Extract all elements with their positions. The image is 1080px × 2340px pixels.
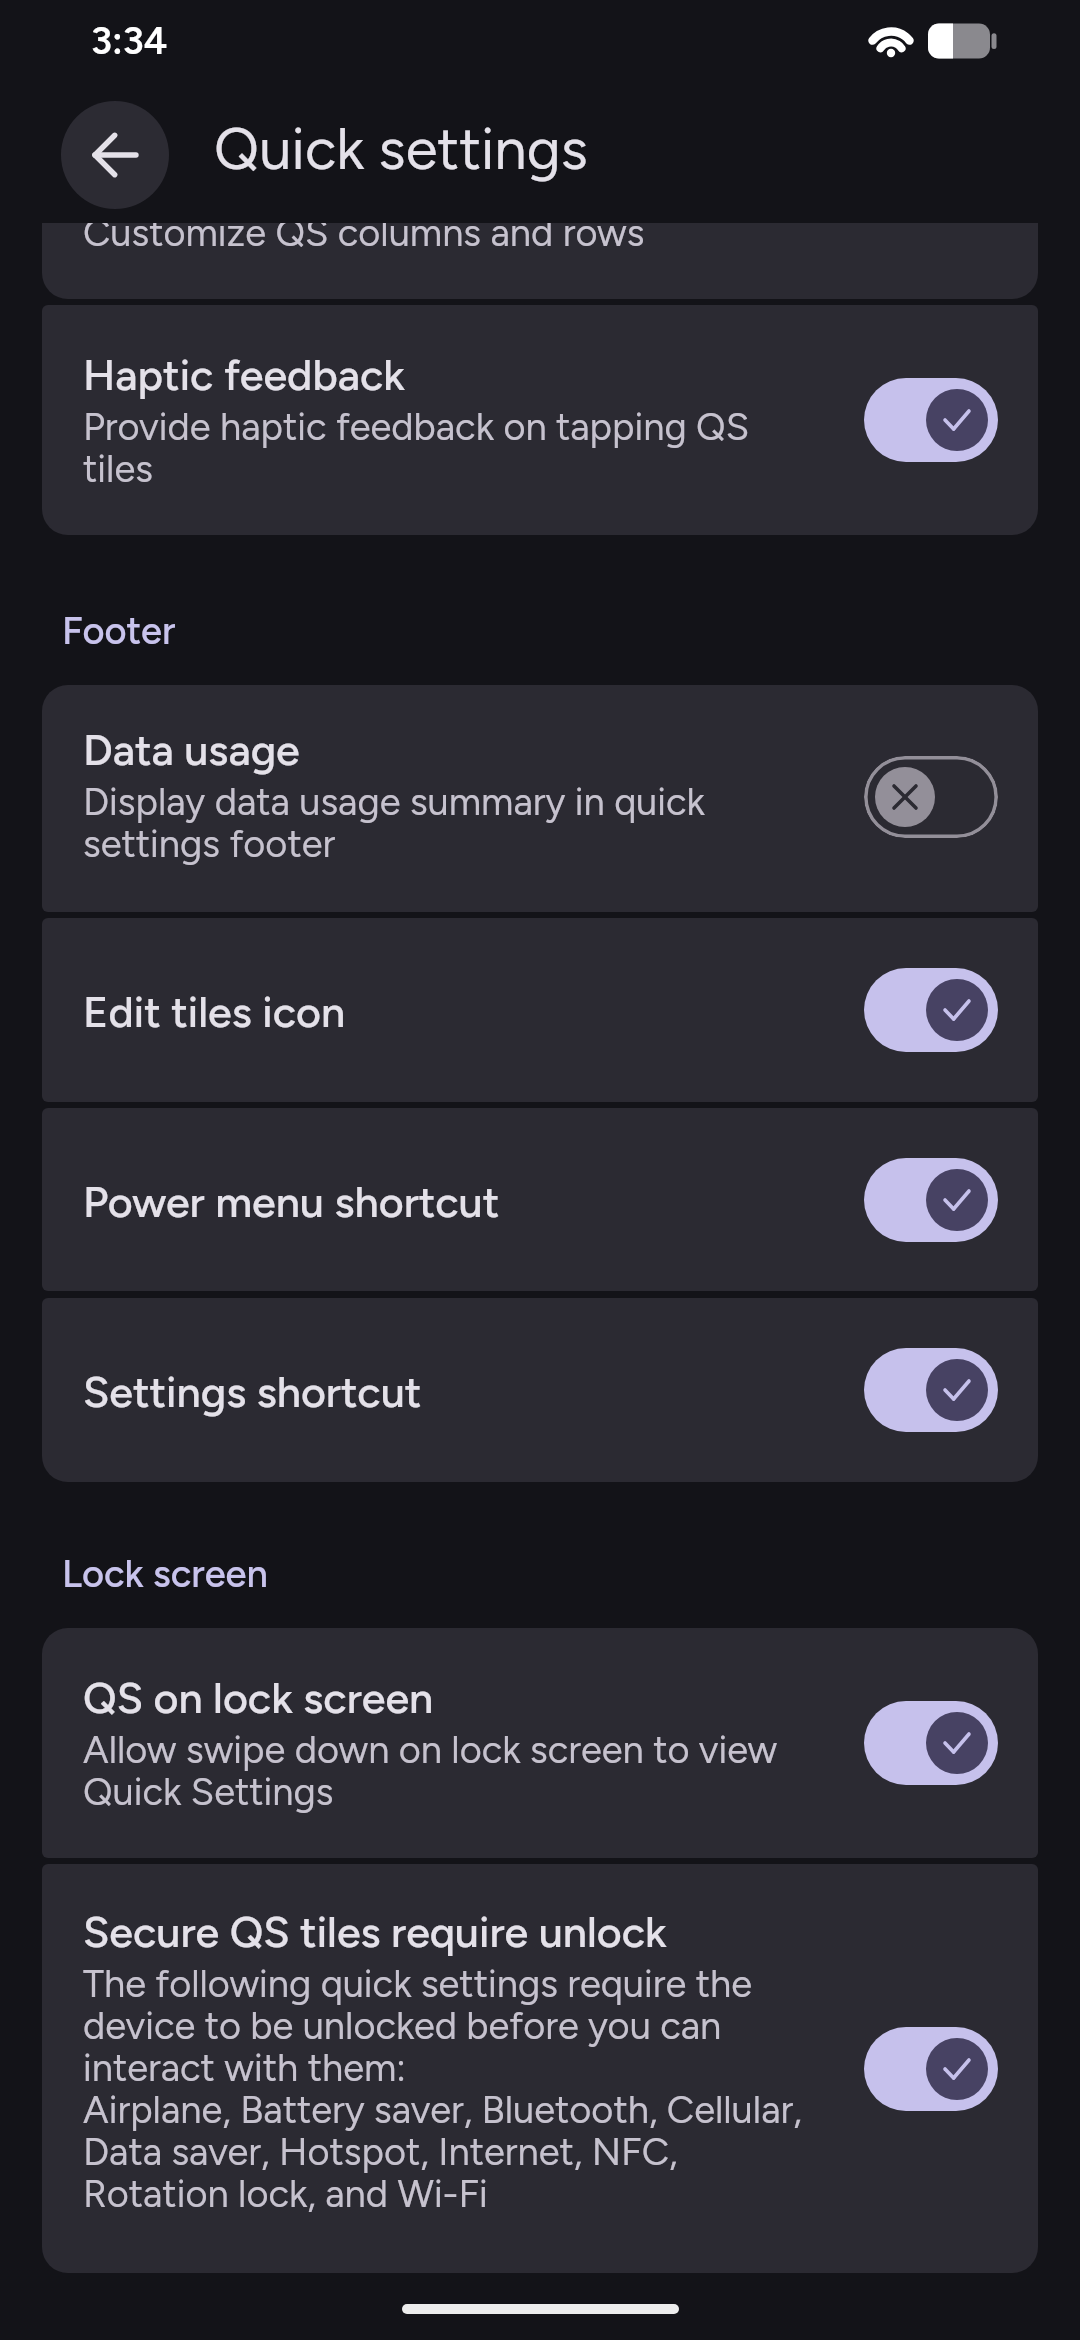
staticText: The following quick settings require the… (83, 1964, 823, 2216)
button[interactable]: Haptic feedback (42, 305, 1038, 535)
staticText: Provide haptic feedback on tapping QS ti… (83, 407, 823, 491)
button[interactable]: On (864, 968, 998, 1052)
staticText: QS on lock screen (83, 1673, 434, 1723)
staticText: Allow swipe down on lock screen to view … (83, 1730, 823, 1814)
button[interactable]: Edit tiles icon (42, 918, 1038, 1102)
button[interactable]: QS on lock screen (42, 1628, 1038, 1858)
button[interactable]: On (864, 378, 998, 462)
button[interactable]: Data usage (42, 685, 1038, 912)
button[interactable]: Off (864, 756, 998, 838)
staticText: Secure QS tiles require unlock (83, 1907, 667, 1957)
staticText: Lock screen (62, 1551, 268, 1597)
button[interactable]: Settings shortcut (42, 1298, 1038, 1482)
staticText: Display data usage summary in quick sett… (83, 782, 823, 866)
button[interactable]: On (864, 2027, 998, 2111)
button[interactable]: On (864, 1158, 998, 1242)
staticText: Data usage (83, 725, 300, 775)
button[interactable]: Secure QS tiles require unlock (42, 1864, 1038, 2273)
button[interactable]: Back (61, 101, 169, 209)
staticText: Footer (62, 608, 176, 654)
staticText: Quick settings (214, 114, 588, 184)
button[interactable]: Customize QS columns and rows (42, 223, 1038, 299)
staticText: 3:34 (91, 23, 168, 62)
button[interactable]: On (864, 1348, 998, 1432)
staticText: Customize QS columns and rows (83, 223, 645, 255)
button[interactable]: Power menu shortcut (42, 1108, 1038, 1291)
staticText: Power menu shortcut (83, 1177, 500, 1227)
button[interactable]: On (864, 1701, 998, 1785)
staticText: Haptic feedback (83, 350, 405, 400)
staticText: Edit tiles icon (83, 987, 346, 1037)
staticText: Settings shortcut (83, 1367, 422, 1417)
